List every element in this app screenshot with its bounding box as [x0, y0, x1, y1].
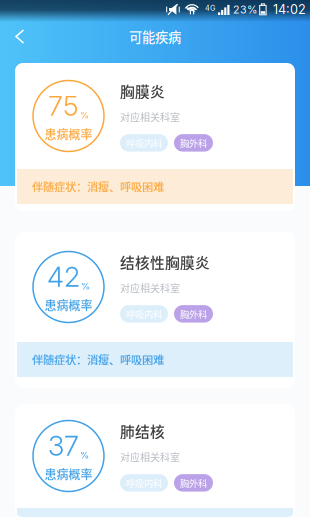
staticText: 结核性胸膜炎 — [120, 251, 210, 273]
staticText: 患病概率 — [44, 296, 92, 314]
staticText: 呼吸内科 — [126, 307, 162, 321]
staticText: 42 — [47, 260, 80, 293]
staticText: 23% — [233, 3, 257, 16]
staticText: 4G — [205, 4, 215, 12]
staticText: 75 — [48, 89, 79, 122]
button[interactable]: Back — [0, 19, 37, 54]
staticText: 胸外科 — [180, 307, 207, 321]
button[interactable]: 42 — [15, 232, 295, 388]
staticText: 对应相关科室 — [120, 281, 180, 295]
staticText: 肺结核 — [120, 420, 165, 442]
staticText: 胸外科 — [180, 476, 207, 490]
staticText: 对应相关科室 — [120, 110, 180, 124]
staticText: 呼吸内科 — [126, 476, 162, 490]
staticText: 患病概率 — [44, 465, 92, 483]
staticText: 对应相关科室 — [120, 450, 180, 464]
staticText: 伴随症状：消瘦、呼吸困难 — [32, 178, 164, 195]
staticText: 胸膜炎 — [120, 80, 165, 102]
staticText: 胸外科 — [180, 136, 207, 150]
staticText: 呼吸内科 — [126, 136, 162, 150]
button[interactable]: 75 — [15, 63, 295, 211]
staticText: 37 — [48, 429, 79, 462]
staticText: 可能疾病 — [129, 27, 181, 46]
staticText: % — [80, 450, 89, 461]
staticText: 伴随症状：消瘦、呼吸困难 — [32, 351, 164, 368]
staticText: % — [80, 110, 89, 121]
button[interactable]: 37 — [15, 404, 295, 517]
staticText: 患病概率 — [44, 125, 92, 143]
staticText: % — [81, 281, 90, 292]
staticText: 14:02 — [273, 2, 306, 17]
